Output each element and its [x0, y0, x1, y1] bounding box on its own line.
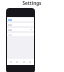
button[interactable]: [7, 18, 34, 21]
staticText: Settings: [0, 0, 64, 6]
button[interactable]: [7, 33, 34, 36]
button[interactable]: [7, 23, 34, 26]
button[interactable]: Tab: [15, 60, 19, 64]
button[interactable]: Tab: [28, 60, 32, 64]
button[interactable]: Tab: [9, 60, 13, 64]
button[interactable]: [7, 28, 34, 31]
button[interactable]: Tab: [22, 60, 26, 64]
